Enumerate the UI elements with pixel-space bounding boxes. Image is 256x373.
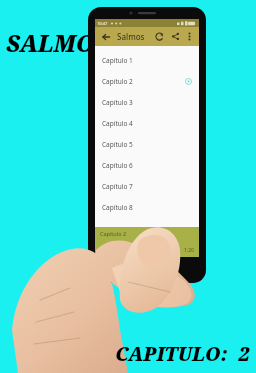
staticText: Capítulo 1	[102, 56, 133, 65]
staticText: Capítulo 4	[102, 119, 133, 128]
button[interactable]: More options	[184, 31, 195, 42]
button[interactable]: Refresh	[153, 30, 166, 43]
button[interactable]: Capítulo 4	[95, 113, 199, 134]
button[interactable]: Capítulo 8	[95, 197, 199, 218]
staticText: Capítulo 3	[102, 98, 133, 107]
button[interactable]: Back	[99, 30, 112, 43]
staticText: Capítulo 2	[100, 230, 127, 237]
staticText: Capítulo 5	[102, 140, 133, 149]
staticText: 1:20	[184, 247, 194, 254]
staticText: Capítulo 7	[102, 182, 133, 191]
button[interactable]: CAPITULO: 2	[115, 341, 250, 367]
button[interactable]: Capítulo 2	[95, 71, 199, 92]
staticText: Capítulo 6	[102, 161, 133, 170]
staticText: Salmos	[117, 31, 145, 42]
button[interactable]: Capítulo 2	[95, 227, 199, 257]
staticText: Capítulo 2	[102, 77, 133, 86]
staticText: 10:47	[97, 21, 108, 26]
button[interactable]: Capítulo 7	[95, 176, 199, 197]
button[interactable]: SALMOS	[6, 27, 109, 58]
button[interactable]: Capítulo 1	[95, 50, 199, 71]
button[interactable]: Capítulo 6	[95, 155, 199, 176]
button[interactable]: Capítulo 5	[95, 134, 199, 155]
staticText: Capítulo 8	[102, 203, 133, 212]
button[interactable]: Capítulo 3	[95, 92, 199, 113]
button[interactable]: Share	[169, 30, 182, 43]
